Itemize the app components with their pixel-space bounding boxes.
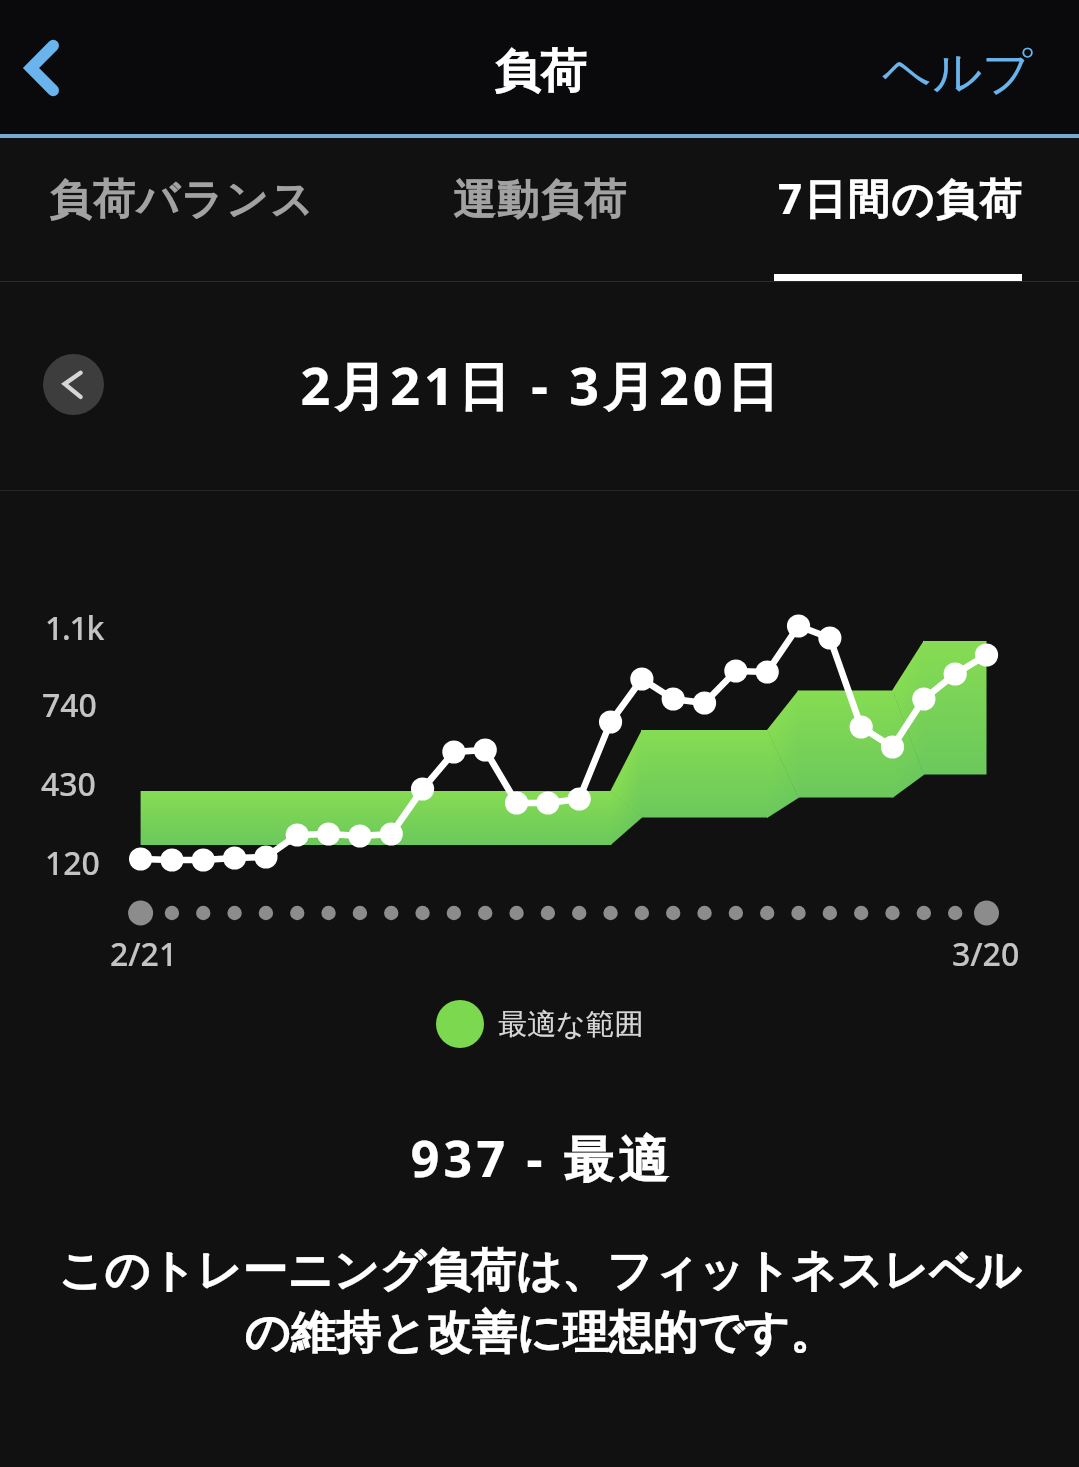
staticText: 740 — [42, 683, 97, 727]
staticText: 7日間の負荷 — [778, 169, 1023, 226]
staticText: 937 - 最適 — [2, 1124, 1079, 1192]
staticText: 2/21 — [110, 932, 178, 976]
staticText: 3/20 — [952, 932, 1020, 976]
staticText: 負荷バランス — [49, 174, 315, 227]
button[interactable]: 前の期間 — [43, 354, 104, 415]
button[interactable]: ヘルプ — [852, 16, 1068, 130]
staticText: 2月21日 - 3月20日 — [2, 349, 1079, 420]
button[interactable]: 運動負荷 — [359, 138, 719, 280]
button[interactable]: 負荷バランス — [0, 138, 359, 280]
staticText: 最適な範囲 — [498, 1006, 644, 1043]
button[interactable]: 7日間の負荷 — [719, 138, 1079, 280]
staticText: 430 — [41, 762, 96, 806]
staticText: 1.1k — [45, 606, 104, 650]
button[interactable]: 戻る — [0, 14, 88, 102]
staticText: このトレーニング負荷は、フィットネスレベル の維持と改善に理想的です。 — [40, 1243, 1039, 1361]
staticText: 120 — [45, 841, 100, 885]
staticText: ヘルプ — [882, 42, 1033, 104]
staticText: 負荷 — [494, 43, 586, 101]
staticText: 運動負荷 — [453, 174, 628, 227]
